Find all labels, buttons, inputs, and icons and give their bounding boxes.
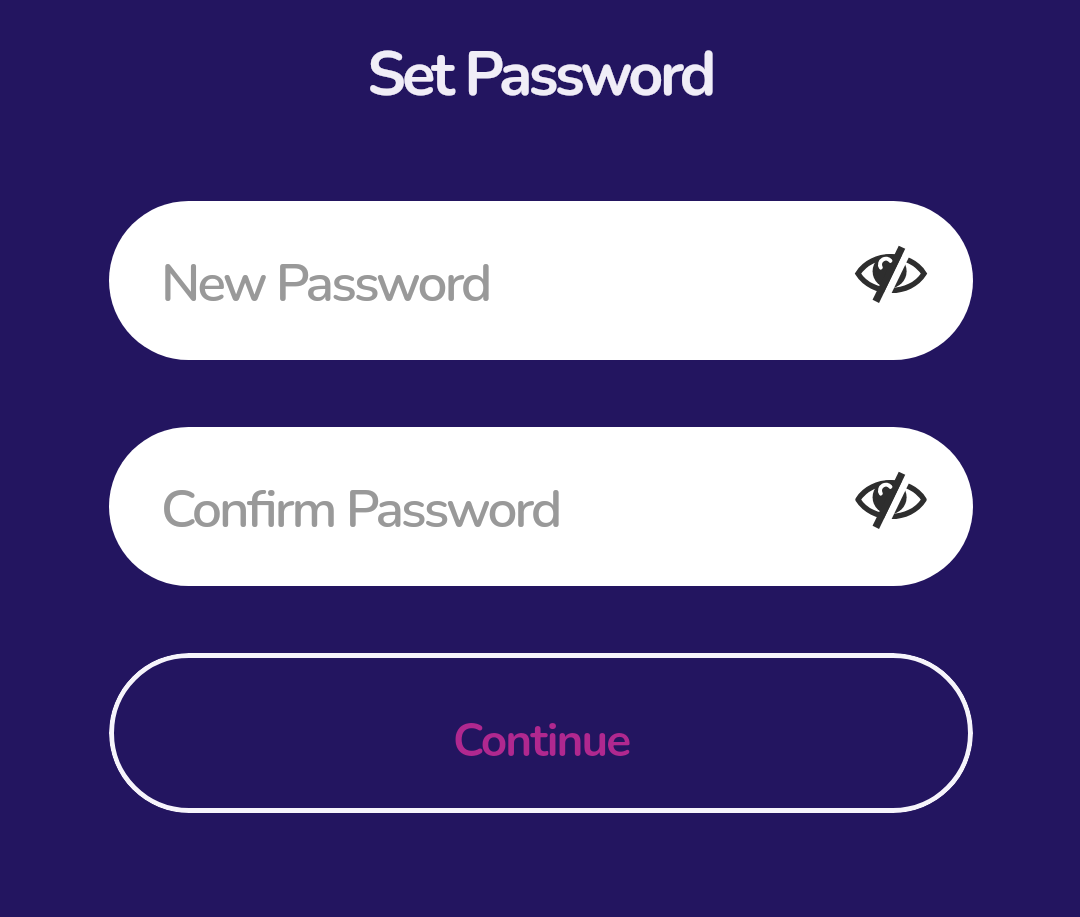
staticText: Continue (453, 709, 630, 772)
staticText: New Password (161, 247, 490, 319)
button[interactable]: New Password (109, 201, 973, 360)
button[interactable]: Show password (855, 473, 927, 529)
button[interactable]: Continue (109, 653, 973, 813)
button[interactable]: Show password (855, 247, 927, 303)
button[interactable]: Confirm Password (109, 427, 973, 586)
staticText: Set Password (0, 33, 1080, 116)
staticText: Confirm Password (161, 473, 560, 545)
